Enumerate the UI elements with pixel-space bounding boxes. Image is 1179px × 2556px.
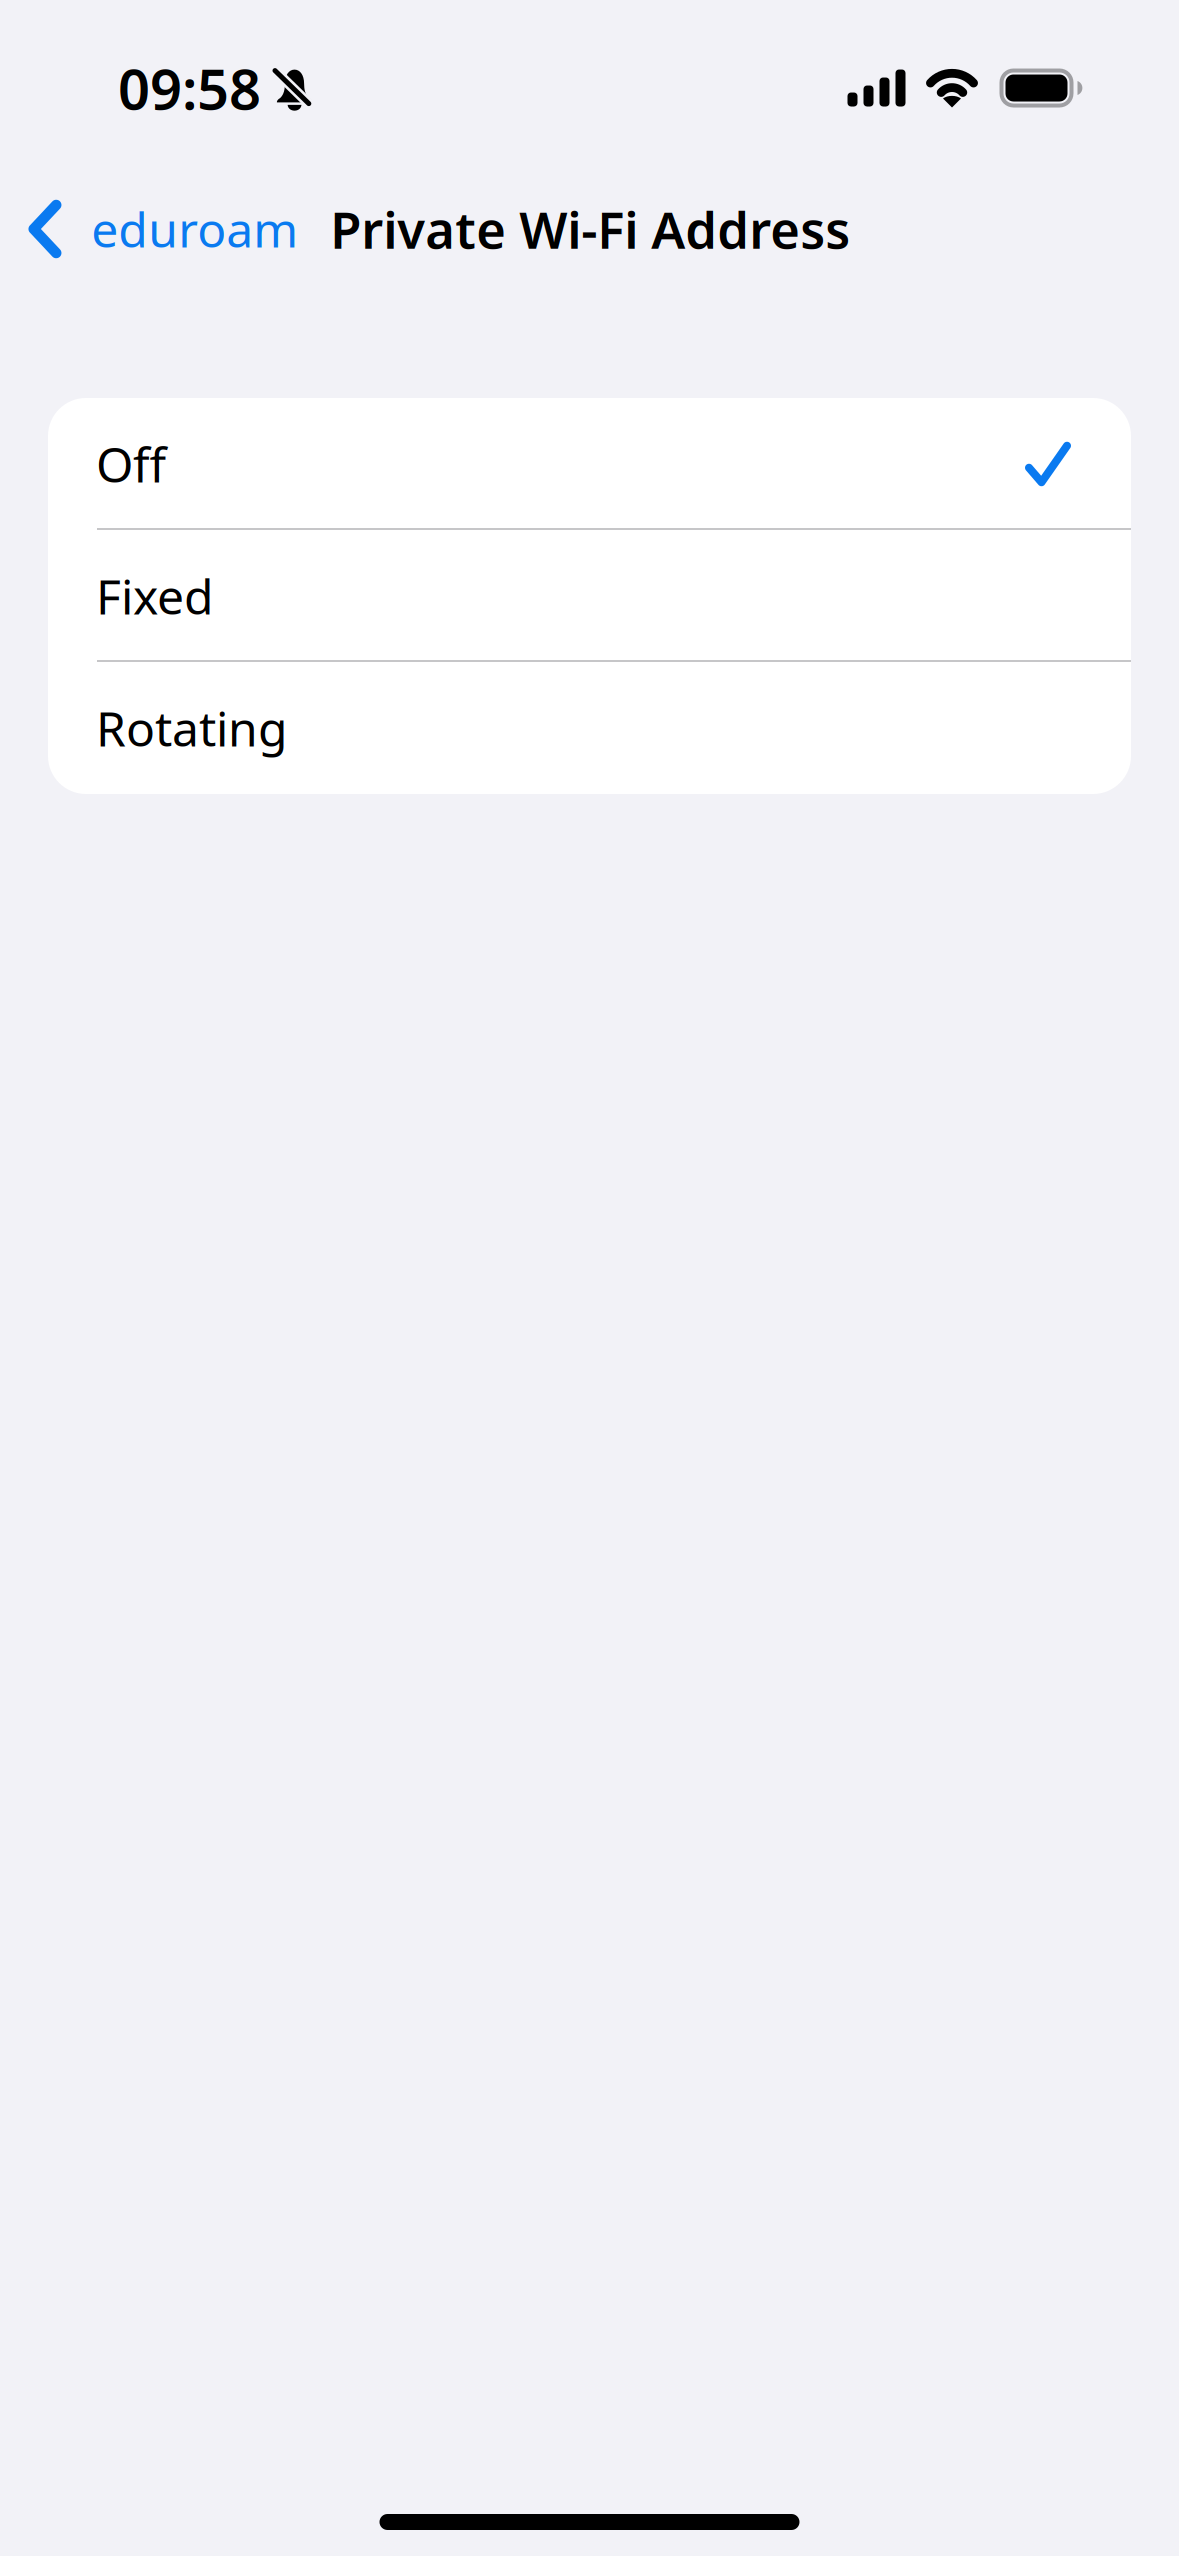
staticText: 09:58 xyxy=(118,51,261,125)
staticText: Fixed xyxy=(96,564,214,628)
staticText: Private Wi-Fi Address xyxy=(330,195,850,263)
button[interactable]: Off xyxy=(48,398,1131,530)
staticText: eduroam xyxy=(91,197,298,261)
button[interactable]: Rotating xyxy=(48,662,1131,794)
staticText: Off xyxy=(96,432,166,496)
button[interactable]: Fixed xyxy=(48,530,1131,662)
staticText: Rotating xyxy=(96,696,288,760)
button[interactable]: Back to eduroam xyxy=(0,171,312,287)
